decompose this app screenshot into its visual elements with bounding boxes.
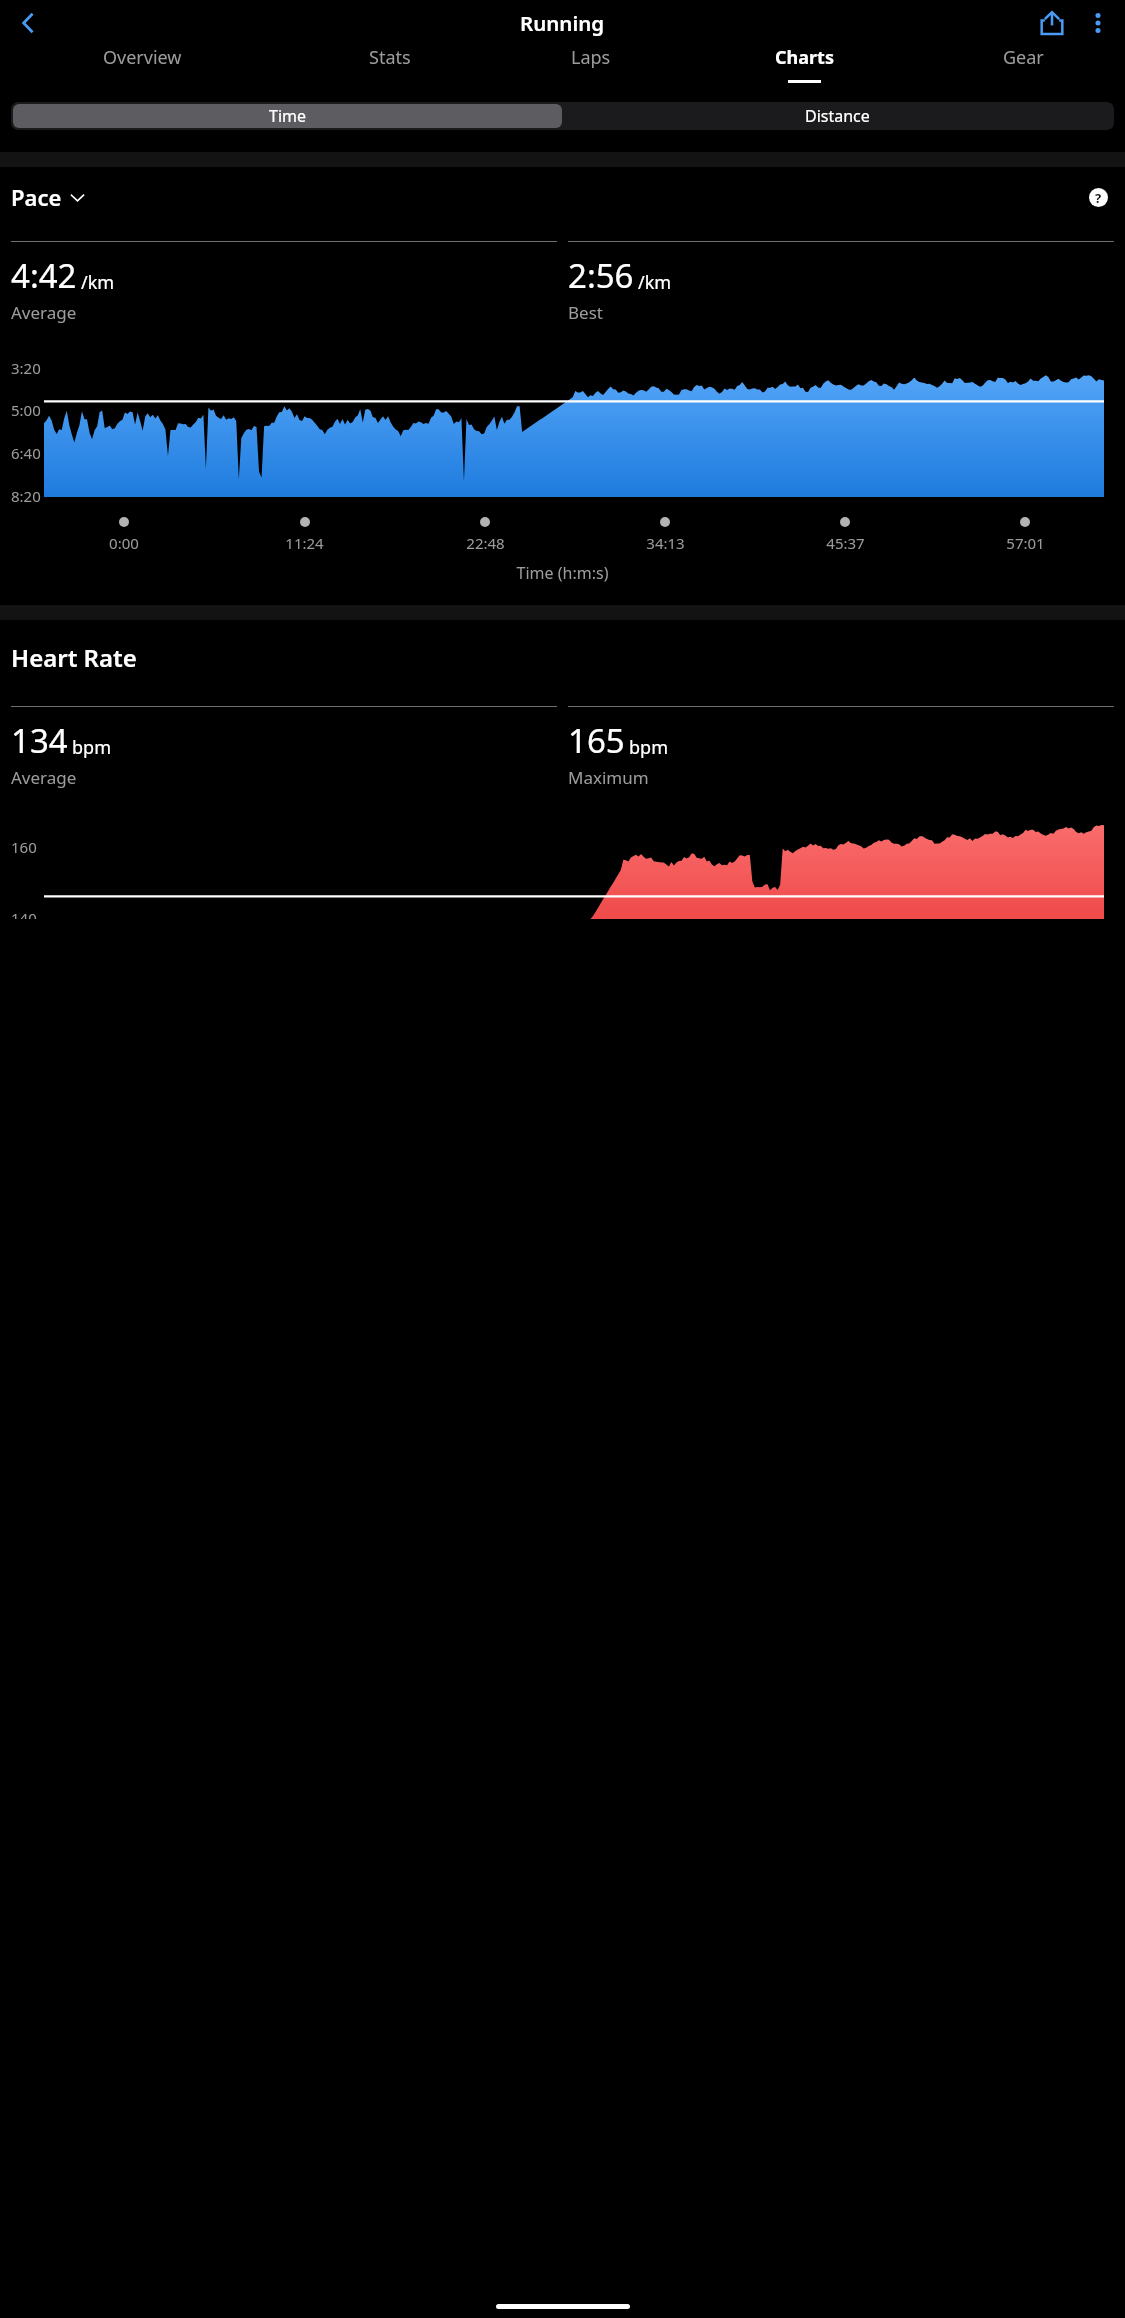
staticText: Time [269,105,307,127]
staticText: 2:56 [568,253,634,298]
staticText: Average [11,766,77,789]
button[interactable]: Overview [0,45,285,90]
staticText: 160 [11,837,37,857]
staticText: /km [638,270,672,295]
button[interactable]: Charts [688,45,921,90]
staticText: 3:20 [11,358,41,378]
button[interactable]: Pace [11,182,86,212]
staticText: Best [568,301,603,324]
button[interactable]: Laps [494,45,688,90]
staticText: 134 [11,718,68,763]
staticText: Running [520,9,605,37]
staticText: Stats [369,45,411,70]
staticText: 34:13 [646,533,685,553]
staticText: /km [81,270,115,295]
staticText: Time (h:m:s) [0,562,1125,584]
staticText: 45:37 [826,533,865,553]
button[interactable]: Back [6,1,50,45]
staticText: 165 [568,718,625,763]
button[interactable]: Time [13,104,562,128]
staticText: 6:40 [11,443,41,463]
staticText: Maximum [568,766,649,789]
staticText: 4:42 [11,253,77,298]
staticText: Pace [11,182,62,212]
staticText: Distance [805,105,870,127]
staticText: Heart Rate [11,641,137,674]
staticText: ? [1095,189,1102,207]
staticText: 22:48 [466,533,505,553]
staticText: 57:01 [1006,533,1045,553]
button[interactable]: Share [1029,0,1075,45]
button[interactable]: More options [1075,0,1121,45]
staticText: Average [11,301,77,324]
staticText: Overview [103,45,182,70]
button[interactable]: Distance [562,104,1112,128]
button[interactable]: Stats [285,45,494,90]
staticText: 11:24 [285,533,324,553]
staticText: 5:00 [11,400,41,420]
staticText: Gear [1003,45,1044,70]
staticText: 0:00 [109,533,139,553]
staticText: bpm [629,735,668,760]
staticText: bpm [72,735,111,760]
button[interactable]: Gear [921,45,1125,90]
staticText: 8:20 [11,486,41,506]
staticText: 140 [11,908,37,919]
staticText: Charts [775,45,834,70]
staticText: Laps [571,45,611,70]
button[interactable]: Help [1082,181,1114,213]
